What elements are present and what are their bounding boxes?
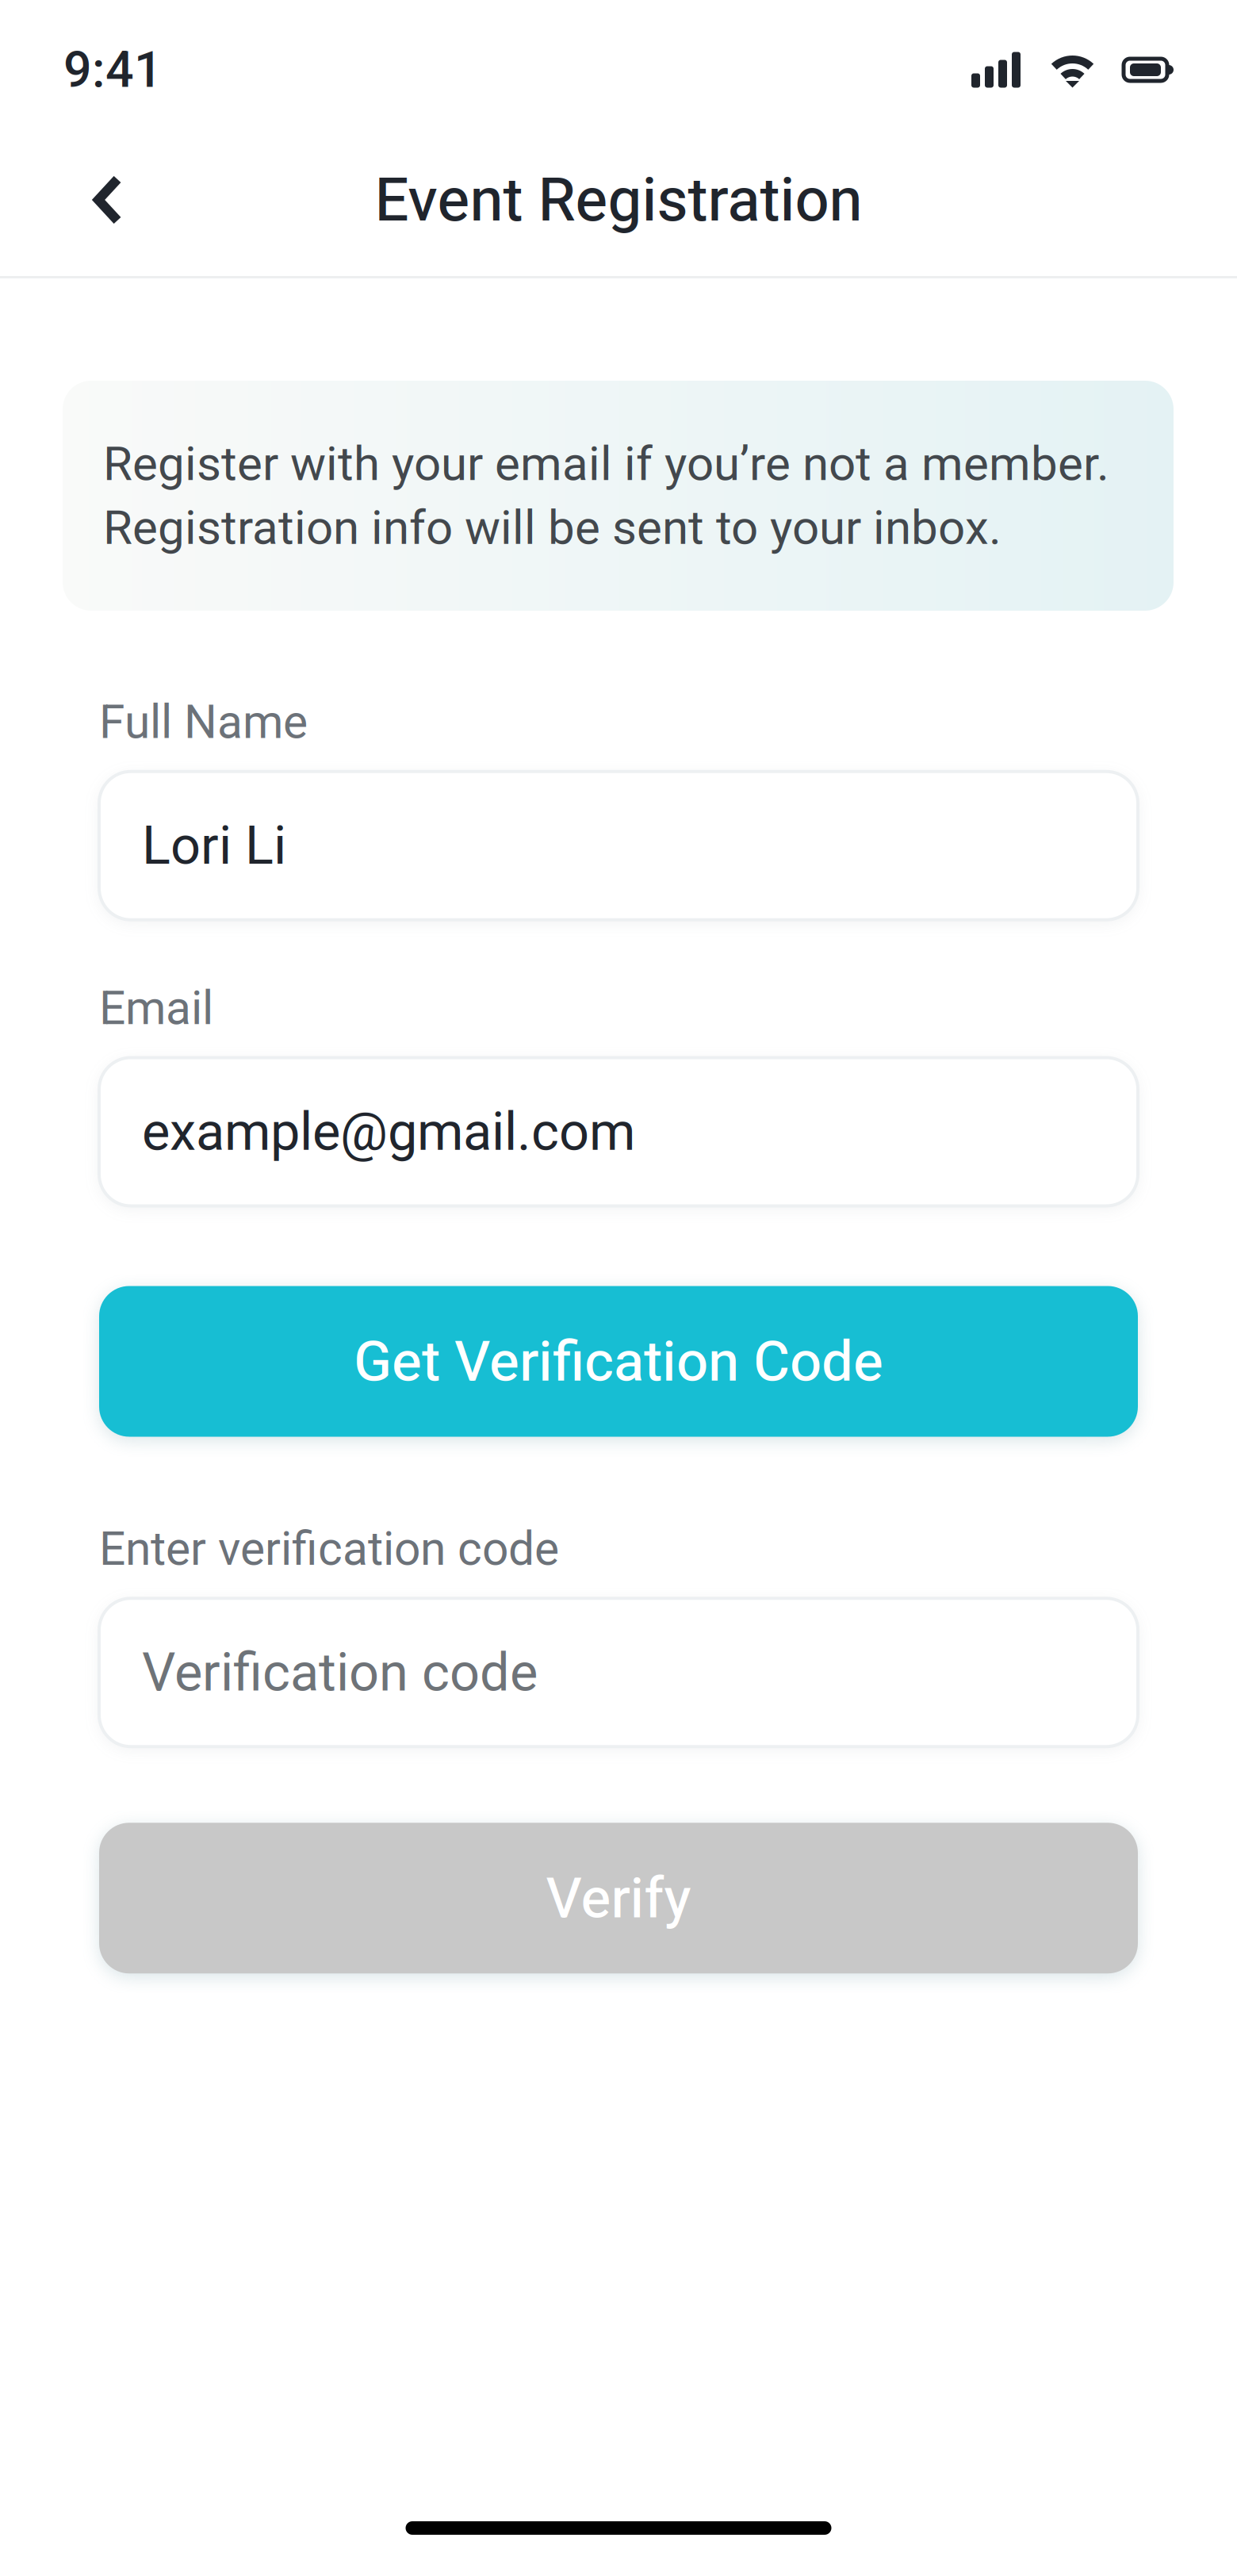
staticText: Get Verification Code bbox=[354, 1329, 883, 1394]
staticText: Lori Li bbox=[142, 815, 286, 877]
staticText: example@gmail.com bbox=[142, 1101, 635, 1163]
staticText: 9:41 bbox=[63, 41, 163, 99]
staticText: Event Registration bbox=[375, 165, 862, 235]
staticText: Verify bbox=[546, 1865, 691, 1931]
button[interactable]: Verify bbox=[99, 1823, 1138, 1973]
staticText: Verification code bbox=[142, 1641, 538, 1703]
staticText: Enter verification code bbox=[99, 1522, 559, 1576]
staticText: Register with your email if you’re not a… bbox=[103, 436, 1109, 492]
staticText: Full Name bbox=[99, 695, 308, 749]
button[interactable]: Get Verification Code bbox=[99, 1286, 1138, 1437]
staticText: Email bbox=[99, 981, 213, 1035]
button[interactable]: Back bbox=[62, 154, 154, 246]
staticText: Registration info will be sent to your i… bbox=[103, 500, 1001, 555]
